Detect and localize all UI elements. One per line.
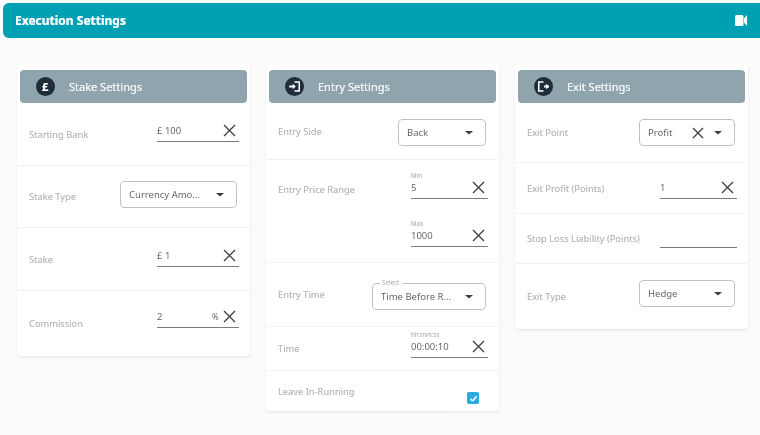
staticText: £ 1 <box>157 249 171 262</box>
other: Clear <box>473 340 484 353</box>
staticText: Max <box>411 219 424 227</box>
button[interactable]: £ <box>20 70 247 103</box>
staticText: Entry Settings <box>318 79 390 94</box>
staticText: 00:00:10 <box>411 340 449 353</box>
other: Clear <box>473 229 484 242</box>
staticText: £ 100 <box>157 124 182 137</box>
staticText: Profit <box>648 126 673 139</box>
staticText: Commission <box>29 317 157 330</box>
button[interactable]: Exit Point <box>515 103 748 162</box>
staticText: Currency Amo... <box>129 188 200 201</box>
button[interactable]: Time <box>266 327 499 370</box>
other: Clear <box>224 124 235 137</box>
other: Clear <box>473 181 484 194</box>
staticText: Stake Type <box>29 190 122 203</box>
staticText: Exit Type <box>527 290 641 303</box>
button[interactable]: Stake <box>17 228 250 290</box>
button[interactable]: Entry Side <box>266 103 499 159</box>
staticText: Stake Settings <box>69 79 142 94</box>
staticText: Leave In-Running <box>278 385 476 398</box>
staticText: Back <box>407 126 429 139</box>
button[interactable]: £ 1 <box>157 249 239 262</box>
staticText: Entry Price Range <box>278 183 411 196</box>
staticText: £ <box>42 79 49 94</box>
button[interactable]: £ 100 <box>157 124 239 137</box>
staticText: Time <box>278 342 411 355</box>
staticText: Exit Settings <box>567 79 631 94</box>
button[interactable]: Record video <box>729 8 753 32</box>
button[interactable]: 2 <box>157 310 239 323</box>
staticText: Time Before R... <box>381 290 452 303</box>
staticText: % <box>212 311 219 322</box>
other: Clear <box>722 181 733 194</box>
button[interactable]: Starting Bank <box>17 103 250 165</box>
staticText: Execution Settings <box>15 12 126 28</box>
staticText: 1 <box>660 181 666 194</box>
button[interactable]: Leave In-Running <box>266 371 499 411</box>
button[interactable]: Exit Settings <box>518 70 745 103</box>
button[interactable]: Leave In-Running <box>467 392 479 404</box>
staticText: Starting Bank <box>29 128 157 141</box>
button[interactable]: Back <box>398 119 486 146</box>
button[interactable]: Stake Type <box>17 166 250 227</box>
button[interactable]: Time Before R... <box>372 283 486 310</box>
staticText: Min <box>411 171 423 179</box>
button[interactable]: 1 <box>660 181 737 194</box>
staticText: Exit Profit (Points) <box>527 182 660 195</box>
button[interactable]: 00:00:10 <box>411 340 488 353</box>
staticText: Select <box>382 278 400 286</box>
button[interactable]: Profit <box>639 119 735 146</box>
button[interactable]: Entry Time <box>266 263 499 326</box>
other: Clear <box>224 310 235 323</box>
button[interactable]: Exit Type <box>515 264 748 329</box>
button[interactable]: Exit Profit (Points) <box>515 163 748 213</box>
button[interactable]: Currency Amo... <box>120 181 237 208</box>
button[interactable]: Entry Price Range <box>266 160 499 262</box>
staticText: Hedge <box>648 287 678 300</box>
staticText: 5 <box>411 181 417 194</box>
button[interactable]: Entry Settings <box>269 70 496 103</box>
staticText: Entry Side <box>278 125 400 138</box>
staticText: Stop Loss Liability (Points) <box>527 232 660 245</box>
button[interactable]: Stop Loss Liability (Points) <box>515 214 748 263</box>
staticText: Exit Point <box>527 126 641 139</box>
other: Clear <box>224 249 235 262</box>
staticText: 2 <box>157 310 163 323</box>
button[interactable]: Commission <box>17 291 250 356</box>
staticText: Entry Time <box>278 288 374 301</box>
staticText: hh:mm:ss <box>411 330 440 338</box>
staticText: Stake <box>29 253 157 266</box>
staticText: 1000 <box>411 229 433 242</box>
button[interactable]: Hedge <box>639 280 735 307</box>
button[interactable]: 1000 <box>411 229 488 242</box>
button[interactable]: 5 <box>411 181 488 194</box>
